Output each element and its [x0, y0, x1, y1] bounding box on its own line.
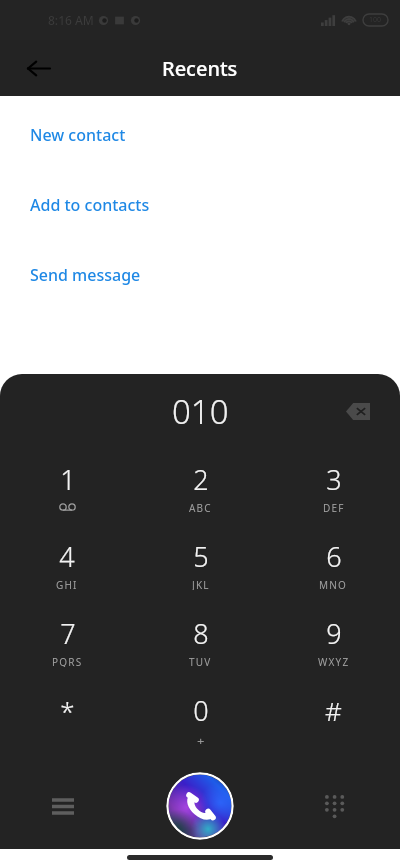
button[interactable]: Dialpad	[312, 783, 358, 829]
button[interactable]: Add to contacts	[0, 192, 400, 218]
staticText: 010	[172, 389, 229, 434]
staticText: 100	[369, 15, 382, 25]
staticText: 8	[193, 615, 209, 652]
staticText: Send message	[30, 264, 141, 286]
staticText: 0	[193, 692, 209, 729]
button[interactable]: 8	[134, 602, 267, 679]
staticText: *	[60, 693, 75, 728]
button[interactable]: Backspace	[338, 391, 378, 431]
staticText: 7	[60, 615, 76, 652]
staticText: 3	[326, 461, 342, 498]
button[interactable]: Call	[166, 772, 234, 840]
staticText: 5	[193, 538, 209, 575]
button[interactable]: Menu	[40, 783, 86, 829]
staticText: New contact	[30, 124, 126, 146]
staticText: Add to contacts	[30, 194, 150, 216]
staticText: TUV	[189, 655, 212, 667]
staticText: 8:16 AM	[48, 12, 94, 28]
staticText: #	[325, 693, 342, 728]
button[interactable]: 5	[134, 525, 267, 602]
button[interactable]: 0	[134, 679, 267, 756]
staticText: +	[197, 732, 206, 744]
staticText: 4	[59, 538, 75, 575]
button[interactable]: Back	[16, 46, 60, 90]
staticText: JKL	[192, 578, 210, 590]
button[interactable]: 3	[267, 448, 400, 525]
staticText: WXYZ	[318, 655, 350, 667]
staticText: 6	[326, 538, 342, 575]
button[interactable]: 4	[0, 525, 134, 602]
button[interactable]: 6	[267, 525, 400, 602]
button[interactable]: 1	[0, 448, 134, 525]
button[interactable]: 7	[0, 602, 134, 679]
button[interactable]: *	[0, 679, 134, 756]
staticText: DEF	[323, 501, 345, 513]
button[interactable]: New contact	[0, 122, 400, 148]
staticText: 9	[326, 615, 342, 652]
staticText: MNO	[319, 578, 348, 590]
staticText: GHI	[56, 578, 78, 590]
button[interactable]: 2	[134, 448, 267, 525]
button[interactable]: Send message	[0, 262, 400, 288]
staticText: Recents	[162, 55, 238, 82]
button[interactable]: 9	[267, 602, 400, 679]
staticText: 1	[60, 461, 76, 498]
staticText: PQRS	[52, 655, 83, 667]
staticText: ABC	[189, 501, 212, 513]
staticText: 2	[193, 461, 209, 498]
button[interactable]: #	[267, 679, 400, 756]
